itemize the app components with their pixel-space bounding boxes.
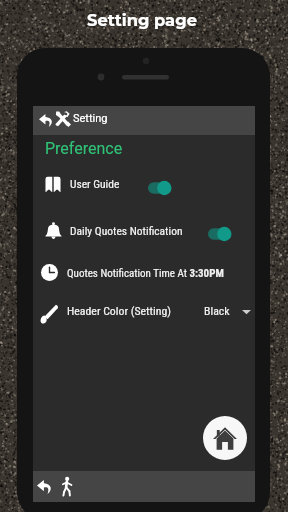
button[interactable]: Back [33,471,55,502]
staticText: Black [204,304,230,318]
button[interactable]: Enable daily quotes notification [208,224,234,244]
button[interactable]: Back [34,106,58,135]
button[interactable]: Walking mode [55,471,77,502]
staticText: Daily Quotes Notification [70,224,183,237]
staticText: Header Color (Setting) [67,304,172,318]
staticText: Quotes Notification Time At 3:30PM [67,267,224,280]
button[interactable]: Black [204,302,251,320]
button[interactable]: Home [203,416,247,460]
staticText: Setting page [87,10,197,30]
button[interactable]: Enable user guide [148,178,174,198]
staticText: User Guide [70,177,120,190]
staticText: Preference [45,139,123,158]
staticText: Setting [73,112,108,125]
